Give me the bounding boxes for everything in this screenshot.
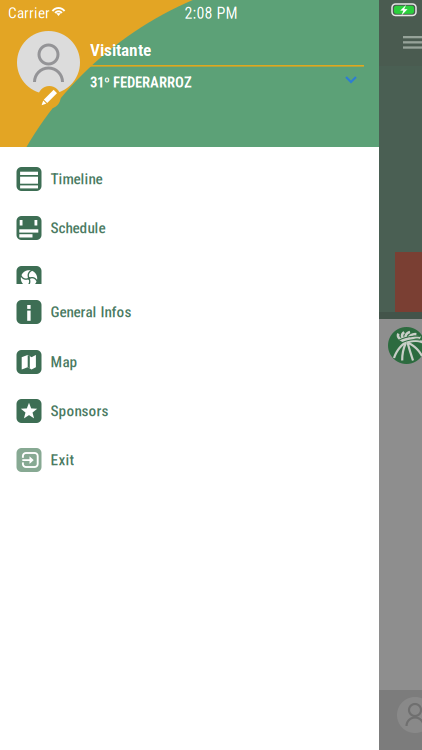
staticText: Carrier [8, 4, 50, 22]
button[interactable]: Change event [339, 70, 365, 92]
button[interactable]: General Infos [0, 290, 379, 334]
button[interactable]: Sponsors [0, 389, 379, 433]
button[interactable]: Exit [0, 438, 379, 482]
staticText: Timeline [50, 170, 102, 188]
button[interactable]: Edit profile [38, 86, 61, 109]
button[interactable]: Schedule [0, 206, 379, 250]
staticText: Exit [50, 451, 74, 469]
button[interactable]: Map [0, 340, 379, 384]
button[interactable]: Timeline [0, 157, 379, 201]
button[interactable]: Refresh [0, 253, 379, 297]
staticText: Visitante [90, 40, 151, 60]
staticText: 31º FEDERARROZ [90, 74, 192, 91]
staticText: Schedule [50, 219, 105, 237]
staticText: General Infos [50, 303, 131, 321]
staticText: Map [50, 353, 77, 371]
staticText: Sponsors [50, 402, 108, 420]
staticText: 2:08 PM [184, 4, 237, 23]
